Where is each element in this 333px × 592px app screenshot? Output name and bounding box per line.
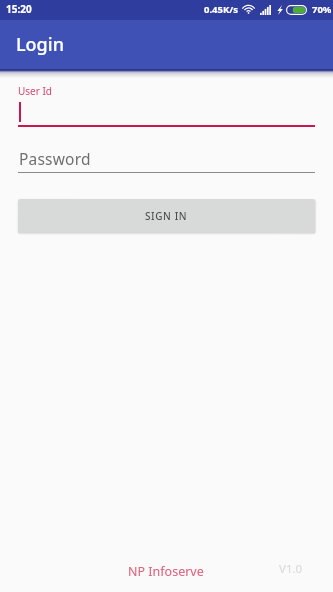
staticText: 0.45K/s	[204, 3, 238, 16]
button[interactable]: Password	[18, 147, 315, 173]
button[interactable]: SIGN IN	[18, 199, 315, 233]
staticText: V1.0	[279, 561, 303, 577]
staticText: User Id	[18, 84, 53, 98]
button[interactable]: User Id	[18, 82, 315, 127]
staticText: SIGN IN	[145, 209, 188, 223]
staticText: 70%	[312, 3, 332, 16]
button[interactable]: NP Infoserve	[128, 563, 204, 580]
staticText: Password	[19, 148, 91, 169]
staticText: 15:20	[6, 2, 32, 16]
staticText: Login	[16, 32, 64, 57]
